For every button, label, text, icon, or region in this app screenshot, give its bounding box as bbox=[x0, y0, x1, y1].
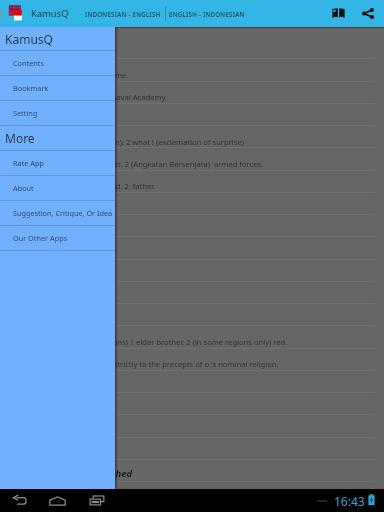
button[interactable] bbox=[0, 36, 384, 58]
button[interactable]: Suggestion, Critique, Or Idea bbox=[0, 201, 115, 225]
button[interactable] bbox=[0, 325, 384, 347]
staticText: Contents bbox=[13, 58, 44, 68]
button[interactable] bbox=[0, 58, 384, 80]
button[interactable]: ENGLISH - INDONESIAN bbox=[166, 0, 248, 27]
button[interactable] bbox=[0, 259, 384, 281]
staticText: abangan one who does not astrictly to th… bbox=[10, 359, 384, 369]
staticText: About bbox=[13, 183, 34, 193]
button[interactable]: Our Other Apps bbox=[0, 226, 115, 250]
button[interactable] bbox=[0, 370, 384, 392]
button[interactable]: Dictionary bbox=[327, 0, 349, 27]
staticText: More bbox=[5, 130, 35, 146]
button[interactable] bbox=[0, 170, 384, 192]
button[interactable]: About bbox=[0, 176, 115, 200]
button[interactable]: Recent apps bbox=[86, 489, 108, 512]
staticText: Rate App bbox=[13, 158, 44, 168]
staticText: Setting bbox=[13, 108, 38, 118]
staticText: abah 1 direction. 2 father. abad. 2 fath… bbox=[10, 181, 384, 191]
button[interactable] bbox=[0, 392, 384, 414]
button[interactable] bbox=[0, 81, 384, 103]
staticText: abang (in some regions) 1 elions) 1 elde… bbox=[10, 337, 384, 347]
staticText: Bookmark bbox=[13, 83, 49, 93]
button[interactable] bbox=[0, 459, 384, 481]
staticText: pecah terpecah dipecched bbox=[10, 467, 384, 480]
staticText: abri (Angkatan Bersenjata Reet. 2 (Angka… bbox=[10, 159, 384, 169]
staticText: apa 1 what (question). 2 whatn). 2 what … bbox=[10, 137, 384, 147]
button[interactable]: INDONESIAN - ENGLISH bbox=[80, 0, 165, 27]
button[interactable] bbox=[0, 192, 384, 214]
button[interactable]: Share bbox=[357, 0, 379, 27]
button[interactable]: Home bbox=[46, 489, 68, 512]
button[interactable] bbox=[0, 103, 384, 125]
staticText: ENGLISH - INDONESIAN bbox=[169, 10, 245, 18]
staticText: 16:43 bbox=[334, 493, 365, 509]
staticText: INDONESIAN - ENGLISH bbox=[85, 10, 161, 18]
button[interactable]: Setting bbox=[0, 101, 115, 125]
button[interactable] bbox=[0, 236, 384, 258]
button[interactable] bbox=[0, 348, 384, 370]
button[interactable] bbox=[0, 303, 384, 325]
staticText: Suggestion, Critique, Or Idea bbox=[13, 208, 113, 218]
button[interactable]: Open navigation drawer bbox=[0, 0, 5, 27]
staticText: Our Other Apps bbox=[13, 233, 68, 243]
staticText: abad 1 century. 2 age, era. beme. bbox=[10, 70, 384, 80]
staticText: akademi academy. Akademi Aaval Academy. bbox=[10, 92, 384, 102]
button[interactable] bbox=[0, 147, 384, 169]
button[interactable] bbox=[0, 414, 384, 436]
staticText: KamusQ bbox=[5, 31, 53, 47]
button[interactable] bbox=[0, 125, 384, 147]
button[interactable] bbox=[0, 281, 384, 303]
button[interactable]: Back bbox=[9, 489, 31, 512]
button[interactable]: Contents bbox=[0, 51, 115, 75]
staticText: KamusQ bbox=[31, 7, 69, 20]
button[interactable]: Rate App bbox=[0, 151, 115, 175]
button[interactable] bbox=[0, 437, 384, 459]
button[interactable] bbox=[0, 214, 384, 236]
button[interactable]: Bookmark bbox=[0, 76, 115, 100]
